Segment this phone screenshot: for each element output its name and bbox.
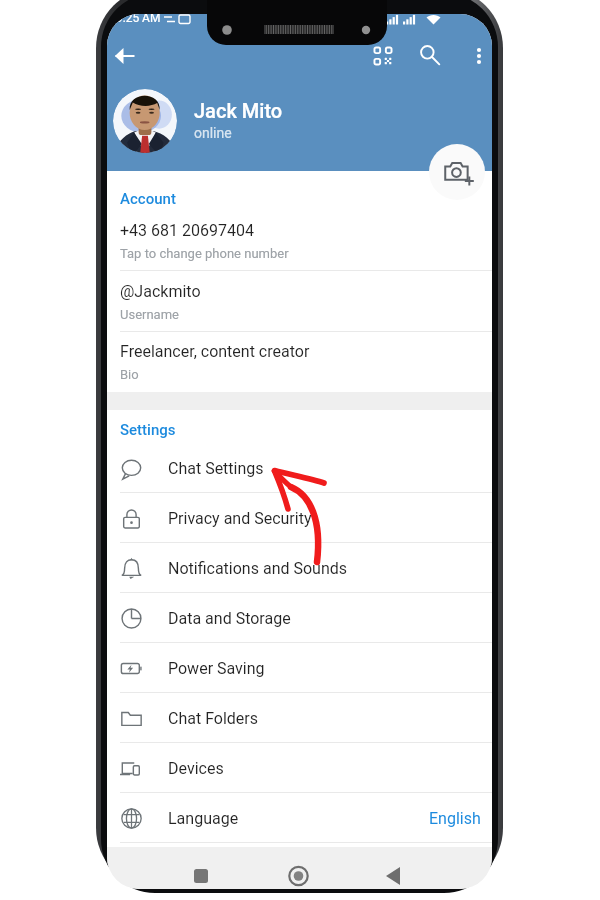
staticText: Power Saving [168, 659, 265, 678]
button[interactable]: Back [107, 37, 144, 75]
button[interactable]: Home [272, 859, 324, 889]
button[interactable]: +43 681 20697404 [107, 216, 492, 268]
button[interactable]: Recent apps [175, 859, 227, 889]
button[interactable]: Scan QR code [365, 38, 401, 74]
button[interactable]: Power Saving [107, 643, 492, 693]
staticText: @Jackmito [120, 282, 201, 301]
staticText: Username [120, 307, 179, 322]
staticText: Bio [120, 367, 139, 382]
staticText: Jack Mito [194, 99, 283, 122]
staticText: Chat Settings [168, 459, 264, 478]
button[interactable]: More options [462, 39, 492, 73]
staticText: Tap to change phone number [120, 246, 289, 261]
button[interactable]: Profile photo [113, 89, 177, 153]
button[interactable]: Freelancer, content creator [107, 337, 492, 389]
staticText: Account [120, 190, 176, 208]
button[interactable]: Chat Folders [107, 693, 492, 743]
staticText: Chat Folders [168, 709, 259, 728]
staticText: Privacy and Security [168, 509, 312, 528]
staticText: 9:25 AM [116, 14, 161, 22]
staticText: +43 681 20697404 [120, 221, 254, 240]
staticText: Notifications and Sounds [168, 559, 348, 578]
button[interactable]: Language [107, 793, 492, 843]
staticText: English [429, 809, 481, 828]
button[interactable]: Devices [107, 743, 492, 793]
button[interactable]: Notifications and Sounds [107, 543, 492, 593]
button[interactable]: Search [412, 37, 448, 73]
staticText: online [194, 125, 232, 141]
staticText: Data and Storage [168, 609, 291, 628]
button[interactable]: Change profile photo [429, 144, 485, 200]
button[interactable]: Chat Settings [107, 443, 492, 493]
button[interactable]: @Jackmito [107, 277, 492, 329]
button[interactable]: Privacy and Security [107, 493, 492, 543]
staticText: Language [168, 809, 239, 828]
button[interactable]: Back [369, 859, 421, 889]
staticText: Settings [120, 421, 176, 439]
button[interactable]: Data and Storage [107, 593, 492, 643]
staticText: Devices [168, 759, 224, 778]
staticText: Freelancer, content creator [120, 342, 310, 361]
